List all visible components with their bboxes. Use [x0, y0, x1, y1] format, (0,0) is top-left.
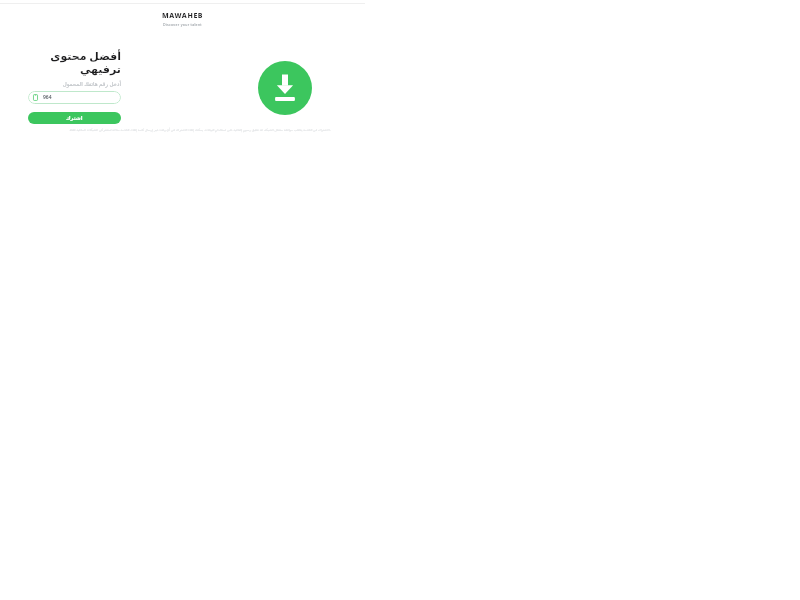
staticText: الاشتراك في الخدمة يتطلب موافقة مشغل الش…: [62, 128, 338, 132]
staticText: Discover your talent: [163, 22, 202, 27]
button[interactable]: 964: [28, 91, 121, 104]
staticText: MAWAHEB: [162, 11, 204, 21]
staticText: أدخل رقم هاتفك المحمول: [62, 80, 121, 87]
staticText: 964: [43, 94, 52, 101]
button[interactable]: Download: [258, 61, 312, 115]
staticText: أفضل محتوى ترفيهي: [28, 48, 121, 76]
button[interactable]: اشترك: [28, 112, 121, 124]
staticText: اشترك: [66, 115, 83, 121]
